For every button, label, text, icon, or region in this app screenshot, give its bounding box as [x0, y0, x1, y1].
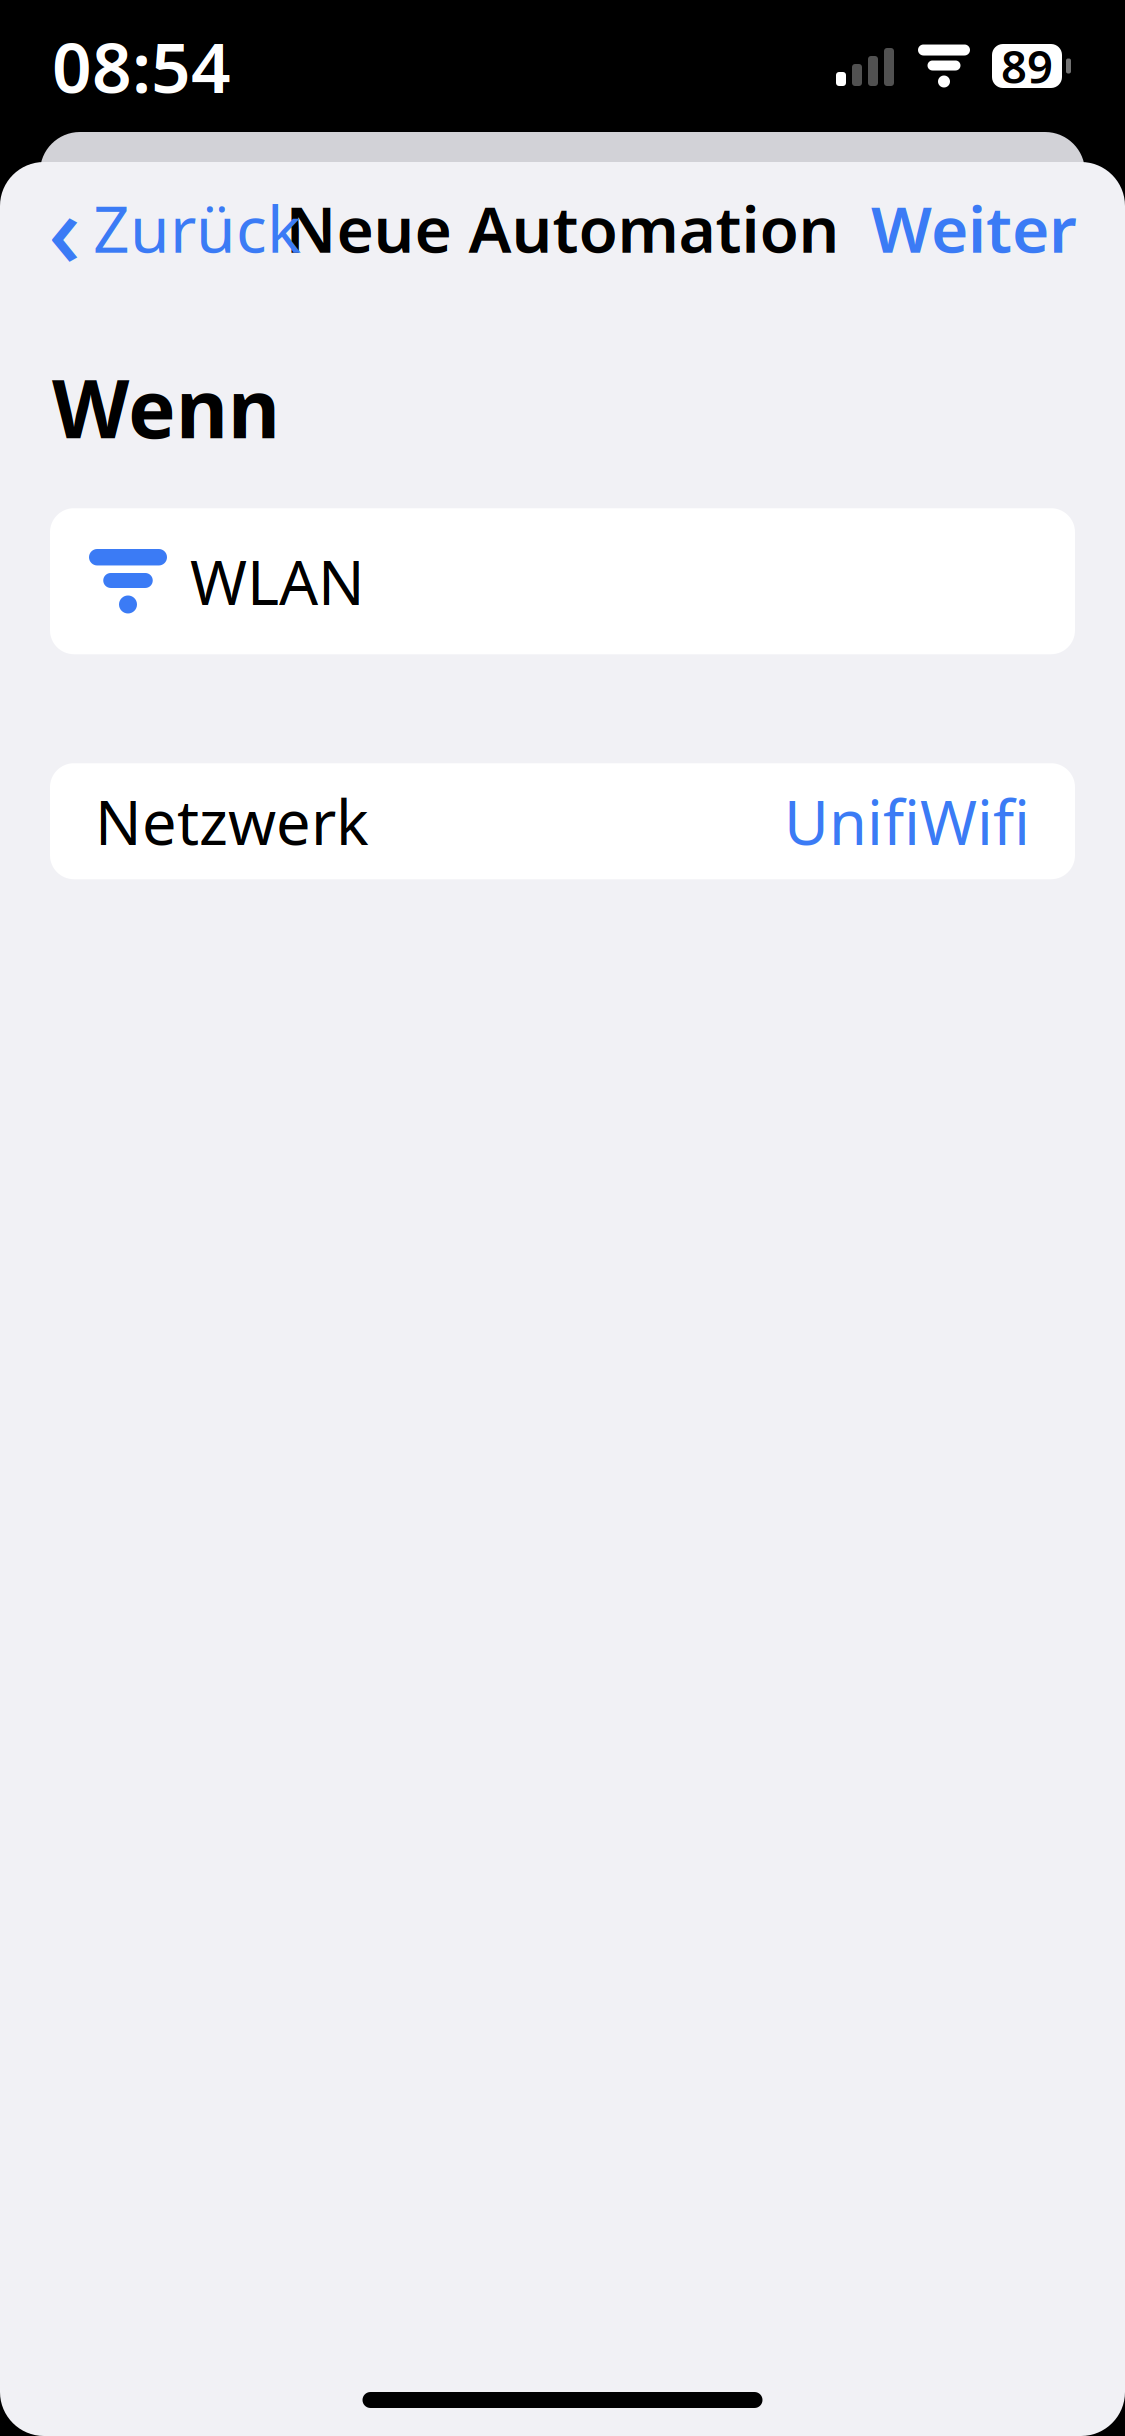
- button[interactable]: ‹: [28, 149, 321, 307]
- staticText: 08:54: [52, 20, 231, 112]
- button[interactable]: WLAN: [50, 508, 1075, 654]
- staticText: ‹: [48, 161, 81, 295]
- staticText: Weiter: [871, 185, 1077, 270]
- staticText: 89: [1001, 36, 1053, 96]
- staticText: Netzwerk: [95, 780, 369, 862]
- staticText: Neue Automation: [285, 185, 839, 270]
- button[interactable]: Weiter: [851, 173, 1097, 282]
- staticText: WLAN: [190, 540, 365, 622]
- staticText: Zurück: [93, 185, 301, 270]
- button[interactable]: Netzwerk: [50, 763, 1075, 879]
- staticText: UnifiWifi: [784, 780, 1030, 862]
- staticText: Wenn: [52, 354, 280, 460]
